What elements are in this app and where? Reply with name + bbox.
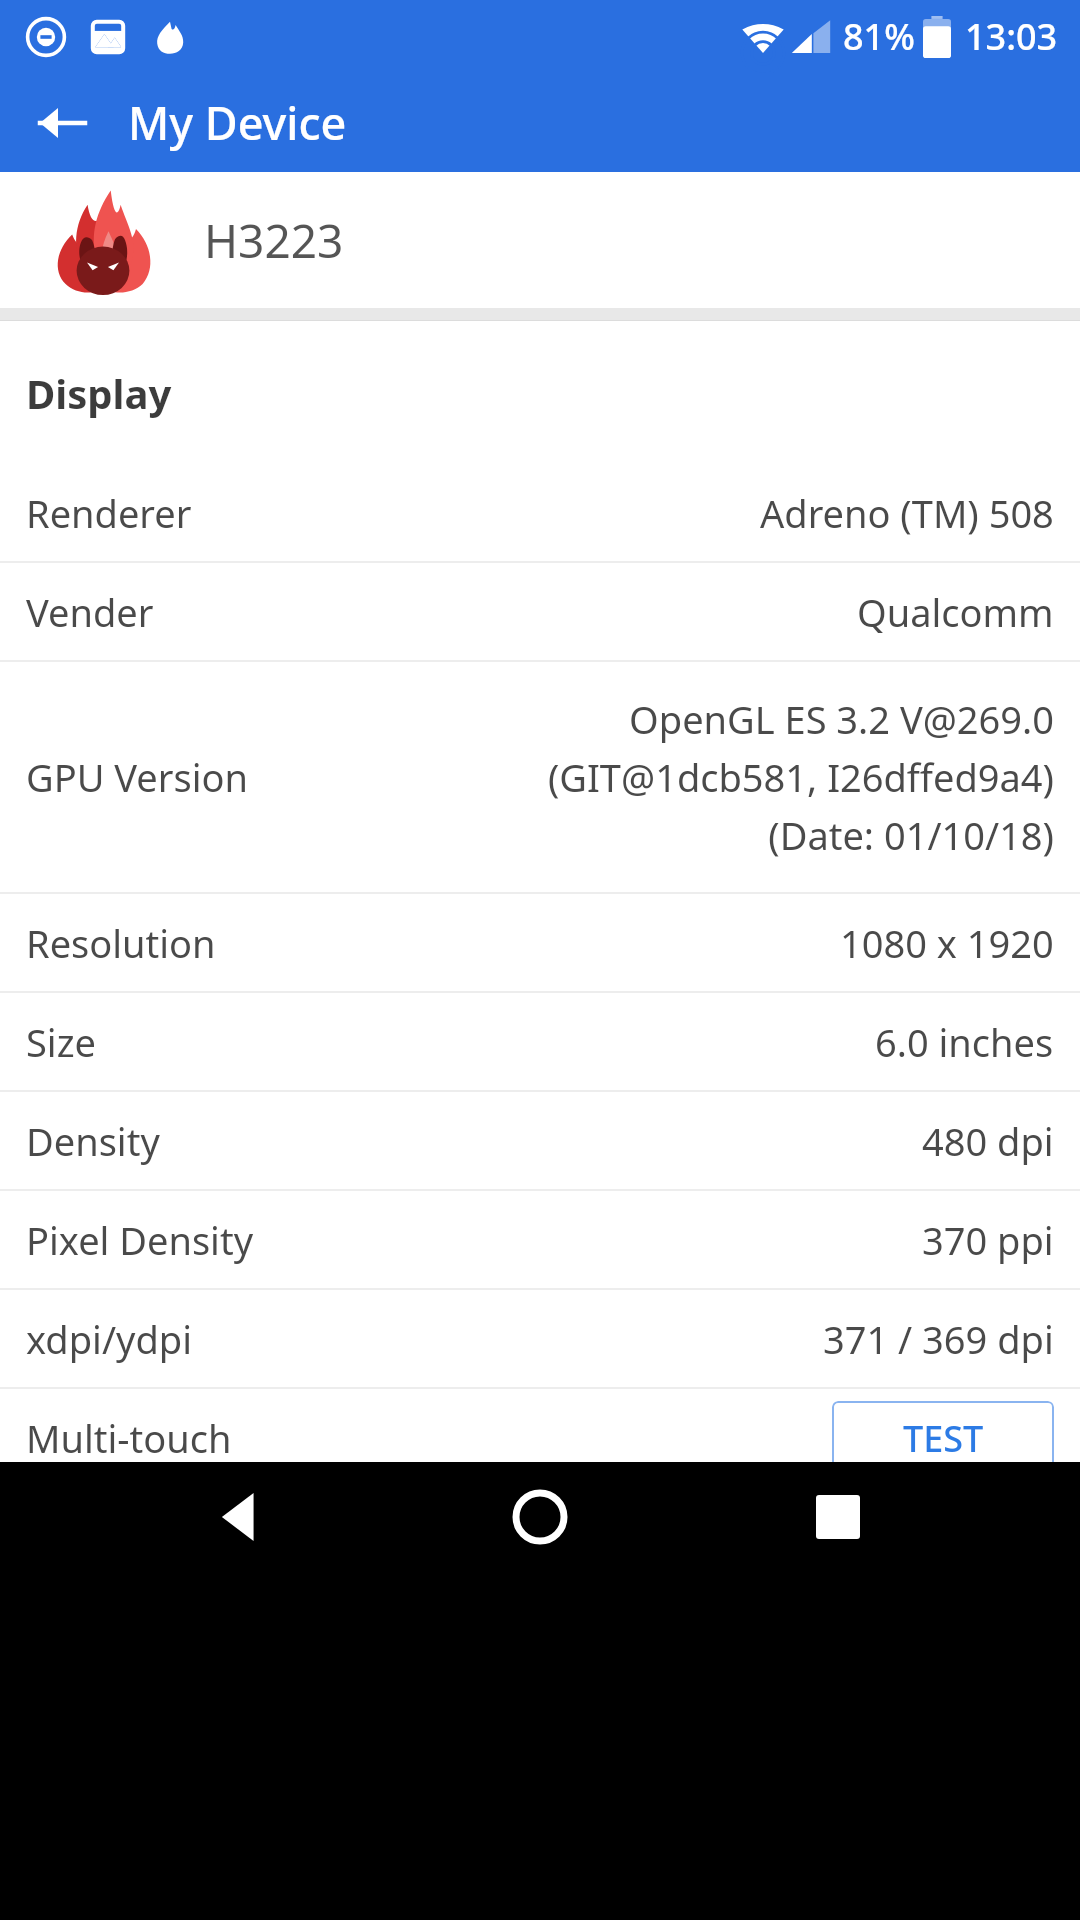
staticText: Size	[26, 1016, 96, 1068]
staticText: My Device	[128, 92, 347, 153]
button[interactable]: Vender	[0, 563, 1080, 660]
button[interactable]: Density	[0, 1092, 1080, 1189]
button[interactable]: Resolution	[0, 894, 1080, 991]
staticText: Resolution	[26, 917, 216, 969]
button[interactable]: Home	[485, 1462, 595, 1572]
staticText: 480 dpi	[922, 1115, 1054, 1167]
staticText: xdpi/ydpi	[26, 1313, 192, 1365]
button[interactable]: H3223	[0, 172, 1080, 308]
button[interactable]: Recent apps	[783, 1462, 893, 1572]
staticText: Renderer	[26, 487, 192, 539]
staticText: 1080 x 1920	[840, 917, 1054, 969]
staticText: Multi-touch	[26, 1412, 232, 1464]
staticText: Qualcomm	[857, 586, 1054, 638]
staticText: Adreno (TM) 508	[760, 487, 1054, 539]
button[interactable]: Pixel Density	[0, 1191, 1080, 1288]
button[interactable]: xdpi/ydpi	[0, 1290, 1080, 1387]
button[interactable]: Back	[22, 83, 102, 163]
staticText: 370 ppi	[922, 1214, 1054, 1266]
staticText: Display	[26, 366, 172, 420]
staticText: H3223	[204, 209, 344, 272]
staticText: OpenGL ES 3.2 V@269.0 (GIT@1dcb581, I26d…	[514, 693, 1054, 861]
staticText: Pixel Density	[26, 1214, 254, 1266]
button[interactable]: GPU Version	[0, 662, 1080, 892]
button[interactable]: TEST	[832, 1401, 1054, 1475]
staticText: 371 / 369 dpi	[823, 1313, 1054, 1365]
button[interactable]: Size	[0, 993, 1080, 1090]
staticText: 81%	[843, 12, 915, 61]
staticText: GPU Version	[26, 751, 248, 803]
button[interactable]: Renderer	[0, 464, 1080, 561]
staticText: 6.0 inches	[875, 1016, 1054, 1068]
staticText: TEST	[903, 1414, 984, 1463]
button[interactable]: Back	[188, 1462, 298, 1572]
staticText: 13:03	[965, 12, 1058, 61]
staticText: Density	[26, 1115, 160, 1167]
staticText: Vender	[26, 586, 154, 638]
